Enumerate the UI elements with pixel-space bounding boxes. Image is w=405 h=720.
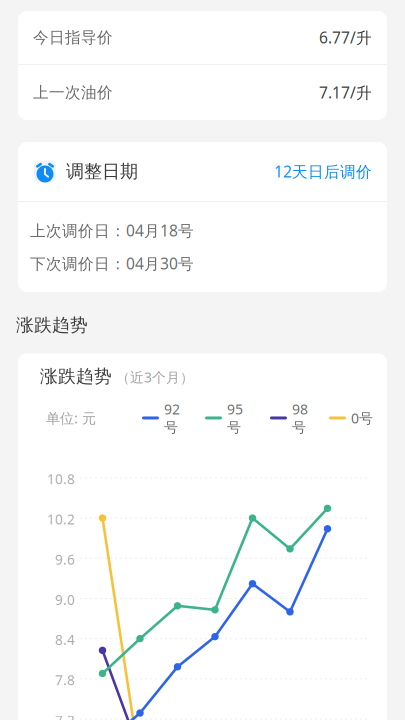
button[interactable]: 调整日期 (18, 142, 387, 201)
staticText: （近3个月） (112, 368, 194, 386)
button[interactable]: 上一次油价 (18, 65, 387, 120)
staticText: 今日指导价 (33, 28, 113, 47)
staticText: 7.8 (55, 671, 75, 689)
staticText: 12天日后调价 (274, 161, 372, 182)
staticText: 7.17/升 (319, 82, 372, 103)
staticText: 0号 (351, 408, 373, 427)
staticText: 上一次油价 (33, 83, 113, 102)
staticText: 6.77/升 (319, 27, 372, 48)
staticText: 上次调价日：04月18号 (30, 220, 194, 241)
staticText: 9.6 (55, 550, 75, 569)
staticText: 8.4 (55, 631, 75, 649)
staticText: 7.2 (55, 711, 75, 720)
staticText: 95号 (227, 399, 243, 436)
staticText: 10.8 (47, 470, 75, 488)
staticText: 92号 (164, 399, 180, 436)
staticText: 10.2 (47, 510, 75, 528)
staticText: 下次调价日：04月30号 (30, 253, 194, 274)
button[interactable]: 今日指导价 (18, 11, 387, 64)
staticText: 涨跌趋势 (16, 314, 88, 336)
staticText: 9.0 (55, 590, 75, 609)
staticText: 单位: 元 (46, 408, 96, 427)
staticText: 98号 (292, 399, 308, 436)
staticText: 涨跌趋势 (40, 365, 112, 388)
staticText: 调整日期 (66, 160, 138, 183)
